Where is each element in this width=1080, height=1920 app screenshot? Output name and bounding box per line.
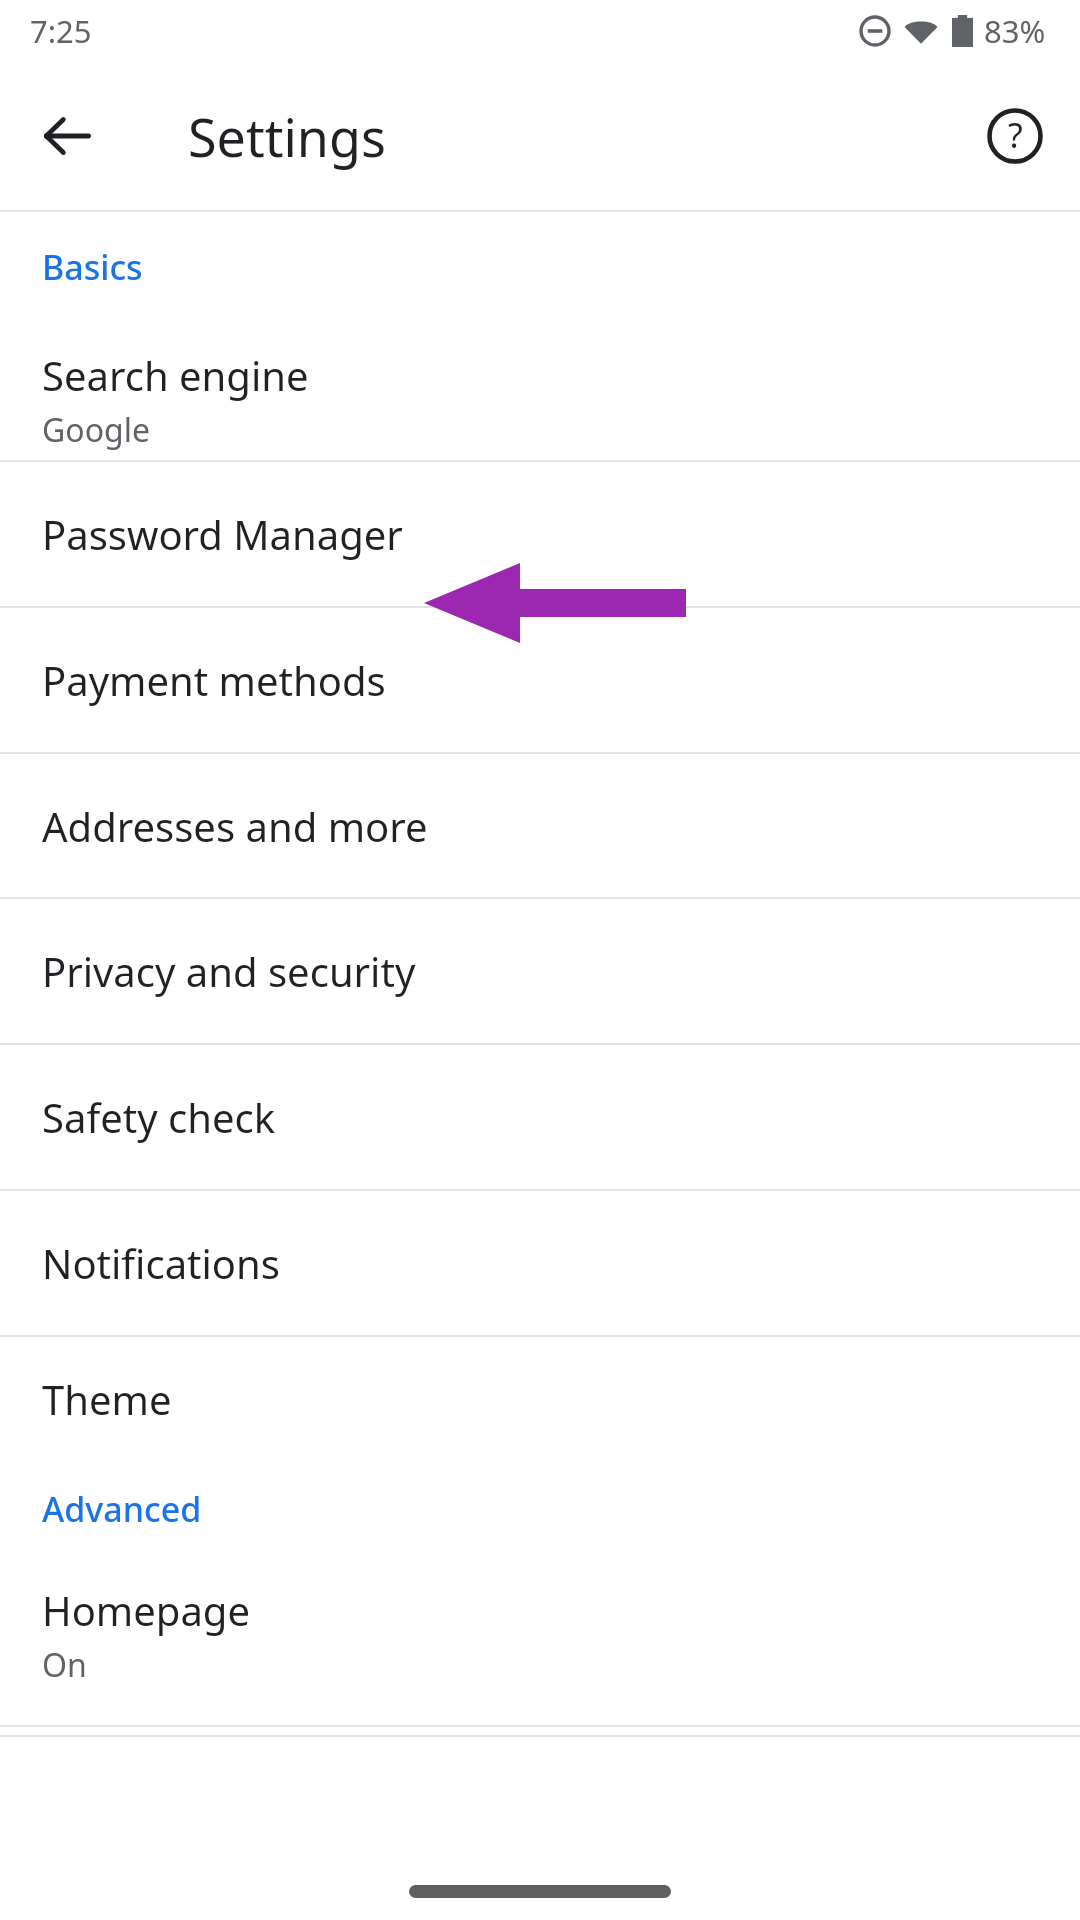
- staticText: 83%: [984, 10, 1046, 52]
- staticText: Basics: [42, 244, 143, 290]
- button[interactable]: Help: [976, 97, 1054, 175]
- staticText: 7:25: [30, 10, 92, 52]
- staticText: Notifications: [42, 1236, 280, 1290]
- button[interactable]: Notifications: [0, 1191, 1080, 1335]
- button[interactable]: Addresses and more: [0, 754, 1080, 897]
- staticText: Settings: [188, 101, 386, 172]
- staticText: Homepage: [42, 1583, 250, 1637]
- button[interactable]: Payment methods: [0, 608, 1080, 752]
- staticText: Addresses and more: [42, 799, 428, 853]
- staticText: Safety check: [42, 1090, 275, 1144]
- staticText: ?: [1008, 112, 1023, 158]
- button[interactable]: Safety check: [0, 1045, 1080, 1189]
- staticText: Privacy and security: [42, 944, 416, 998]
- button[interactable]: Theme: [0, 1337, 1080, 1461]
- staticText: Advanced: [42, 1486, 202, 1532]
- staticText: Payment methods: [42, 653, 386, 707]
- staticText: Google: [42, 408, 151, 452]
- button[interactable]: Back: [30, 99, 104, 173]
- staticText: Password Manager: [42, 507, 403, 561]
- button[interactable]: Homepage: [0, 1557, 1080, 1697]
- staticText: On: [42, 1643, 87, 1687]
- button[interactable]: Password Manager: [0, 462, 1080, 606]
- button[interactable]: Search engine: [0, 322, 1080, 460]
- button[interactable]: Privacy and security: [0, 899, 1080, 1043]
- staticText: Search engine: [42, 348, 309, 402]
- staticText: Theme: [42, 1372, 172, 1426]
